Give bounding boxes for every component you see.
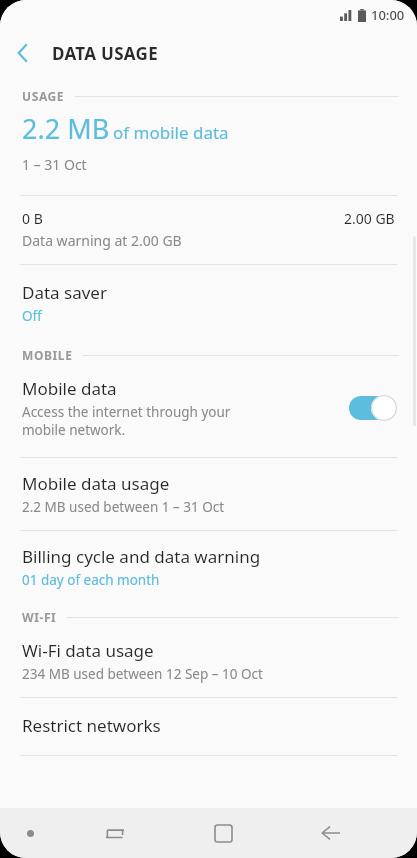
staticText: Billing cycle and data warning: [22, 545, 261, 568]
button[interactable]: Mobile data: [0, 363, 417, 449]
button[interactable]: Mobile data usage: [0, 458, 417, 530]
staticText: Data warning at 2.00 GB: [22, 231, 182, 250]
staticText: Restrict networks: [22, 714, 161, 737]
button[interactable]: Back: [277, 808, 385, 858]
button[interactable]: Billing cycle and data warning: [0, 531, 417, 609]
button[interactable]: Data saver: [0, 265, 417, 347]
staticText: Mobile data usage: [22, 472, 170, 495]
staticText: USAGE: [22, 88, 65, 104]
staticText: 0 B: [22, 209, 43, 228]
button[interactable]: Mobile data toggle: [347, 393, 399, 423]
staticText: 234 MB used between 12 Sep – 10 Oct: [22, 665, 263, 683]
button[interactable]: Restrict networks: [0, 698, 417, 755]
button[interactable]: Home: [169, 808, 277, 858]
staticText: Wi-Fi data usage: [22, 639, 154, 662]
staticText: 10:00: [371, 6, 405, 24]
staticText: Data saver: [22, 281, 107, 304]
button[interactable]: Recents: [61, 808, 169, 858]
staticText: 2.2 MB used between 1 – 31 Oct: [22, 498, 225, 516]
staticText: MOBILE: [22, 347, 73, 363]
button[interactable]: Back: [0, 30, 46, 76]
staticText: of mobile data: [113, 121, 229, 144]
staticText: Off: [22, 307, 42, 325]
button[interactable]: Wi-Fi data usage: [0, 625, 417, 697]
staticText: Access the internet through your mobile …: [22, 403, 276, 439]
staticText: 2.00 GB: [344, 209, 395, 228]
staticText: 1 – 31 Oct: [22, 155, 87, 174]
staticText: WI-FI: [22, 609, 57, 625]
staticText: DATA USAGE: [52, 42, 158, 65]
staticText: 01 day of each month: [22, 571, 160, 589]
staticText: 2.2 MB: [22, 110, 110, 147]
staticText: Mobile data: [22, 377, 117, 400]
